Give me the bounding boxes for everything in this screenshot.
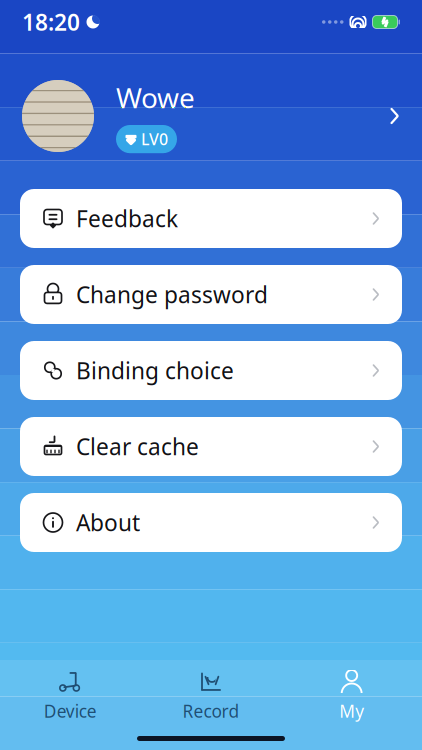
- staticText: Device: [44, 699, 97, 722]
- button[interactable]: Device: [0, 666, 141, 726]
- staticText: LV0: [141, 128, 168, 150]
- button[interactable]: Record: [141, 666, 281, 726]
- button[interactable]: About: [20, 493, 402, 552]
- staticText: Record: [182, 699, 239, 722]
- button[interactable]: Feedback: [20, 189, 402, 248]
- staticText: 18:20: [22, 7, 80, 37]
- staticText: My: [339, 699, 364, 722]
- button[interactable]: Binding choice: [20, 341, 402, 400]
- staticText: About: [76, 507, 140, 537]
- staticText: Wowe: [116, 79, 195, 116]
- staticText: Binding choice: [76, 355, 234, 385]
- staticText: Feedback: [76, 203, 178, 233]
- button[interactable]: Wowe: [0, 70, 422, 162]
- staticText: Clear cache: [76, 431, 199, 461]
- button[interactable]: Change password: [20, 265, 402, 324]
- button[interactable]: Clear cache: [20, 417, 402, 476]
- button[interactable]: My: [281, 666, 422, 726]
- staticText: Change password: [76, 279, 268, 309]
